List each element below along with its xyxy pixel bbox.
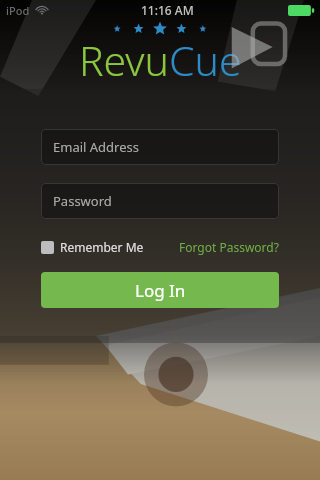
button[interactable]: Forgot Password? [179,239,279,255]
staticText: iPod [6,3,30,18]
staticText: Log In [135,279,186,302]
staticText: 11:16 AM [141,2,194,18]
staticText: Password [53,192,112,210]
button[interactable]: Password [41,183,279,219]
staticText: Email Address [53,138,139,156]
staticText: Remember Me [60,239,144,255]
button[interactable]: Remember Me [41,239,144,255]
staticText: Forgot Password? [179,239,279,255]
staticText: Revu [79,32,169,88]
button[interactable]: Email Address [41,129,279,165]
button[interactable]: Log In [41,272,279,308]
staticText: Cue [169,32,242,88]
